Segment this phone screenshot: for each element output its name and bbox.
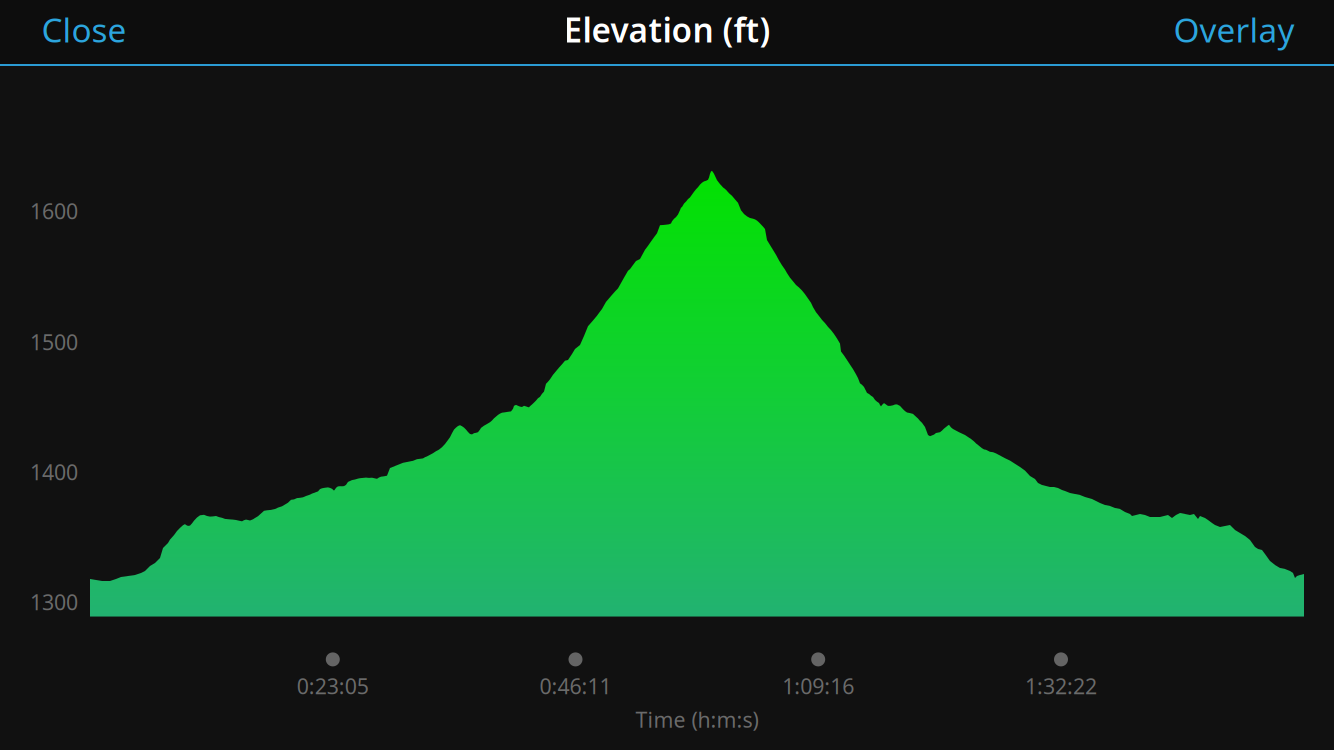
- staticText: 0:46:11: [539, 672, 611, 700]
- staticText: Close: [41, 7, 126, 52]
- staticText: 1:32:22: [1025, 672, 1097, 700]
- staticText: 1400: [30, 458, 78, 486]
- staticText: 0:23:05: [297, 672, 369, 700]
- staticText: Time (h:m:s): [635, 705, 758, 734]
- staticText: 1300: [30, 588, 78, 616]
- staticText: 1500: [30, 328, 78, 356]
- staticText: Overlay: [1173, 7, 1294, 52]
- button[interactable]: Close: [21, 0, 146, 61]
- staticText: 1600: [30, 197, 78, 225]
- staticText: 1:09:16: [782, 672, 854, 700]
- button[interactable]: Overlay: [1154, 0, 1314, 61]
- staticText: Elevation (ft): [563, 7, 770, 52]
